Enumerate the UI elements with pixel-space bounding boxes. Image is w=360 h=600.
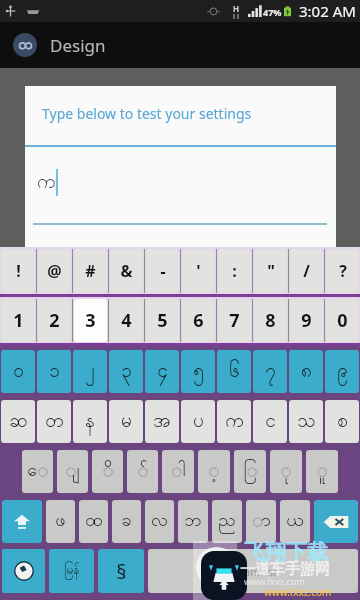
button[interactable]: ၃ (109, 350, 143, 393)
button[interactable]: # (74, 249, 107, 293)
button[interactable]: Myanmar (148, 549, 358, 593)
button[interactable]: & (110, 249, 143, 293)
staticText: က (225, 408, 244, 436)
staticText: ာ (252, 508, 271, 535)
staticText: 3 (85, 308, 96, 333)
button[interactable]: " (254, 249, 287, 293)
button[interactable]: Backspace (314, 500, 358, 543)
button[interactable]: ခ (112, 500, 141, 543)
button[interactable]: ် (127, 450, 158, 493)
button[interactable]: စ (325, 400, 359, 443)
staticText: 3:02 AM (299, 1, 356, 21)
staticText: 47% (263, 6, 282, 18)
button[interactable]: ၈ (289, 350, 323, 393)
button[interactable]: ပ (181, 400, 215, 443)
staticText: / (303, 260, 310, 282)
button[interactable]: 1 (1, 299, 35, 342)
button[interactable]: ၇ (253, 350, 287, 393)
staticText: www.fxxz.com (264, 585, 332, 599)
staticText: - (160, 260, 166, 282)
button[interactable]: App icon (13, 33, 37, 57)
button[interactable]: မြန် (49, 549, 94, 593)
button[interactable]: / (290, 249, 323, 293)
button[interactable]: အ (145, 400, 179, 443)
button[interactable]: ၀ (1, 350, 35, 393)
button[interactable]: လ (145, 500, 174, 543)
button[interactable]: - (146, 249, 179, 293)
staticText: 飞翔下载 (244, 539, 328, 565)
staticText: 2 (49, 308, 60, 333)
button[interactable]: Change keyboard (2, 549, 45, 593)
button[interactable]: ု (270, 450, 302, 493)
staticText: # (85, 260, 96, 282)
staticText: 9 (301, 308, 312, 333)
staticText: Type below to test your settings (42, 104, 252, 123)
staticText: ' (196, 260, 201, 282)
button[interactable]: ြ (234, 450, 266, 493)
staticText: ါ (171, 458, 186, 485)
button[interactable]: ထ (79, 500, 108, 543)
button[interactable]: ၂ (73, 350, 107, 393)
button[interactable]: 2 (38, 299, 71, 342)
staticText: န (85, 408, 95, 436)
button[interactable]: Shift (2, 500, 42, 543)
button[interactable]: ူ (306, 450, 338, 493)
button[interactable]: ျ (57, 450, 88, 493)
button[interactable]: ့ (198, 450, 230, 493)
button[interactable]: ည (212, 500, 242, 543)
staticText: ဖ (55, 508, 66, 535)
button[interactable]: ါ (162, 450, 194, 493)
button[interactable]: 5 (146, 299, 179, 342)
button[interactable]: ၉ (325, 350, 359, 393)
button[interactable]: 4 (110, 299, 143, 342)
staticText: တ (45, 408, 64, 436)
staticText: အ (153, 408, 171, 436)
staticText: ? (339, 260, 347, 282)
button[interactable]: မ (109, 400, 143, 443)
button[interactable]: : (218, 249, 251, 293)
button[interactable]: ၅ (181, 350, 215, 393)
button[interactable]: 3 (74, 299, 107, 342)
button[interactable]: 0 (326, 299, 359, 342)
staticText: & (120, 260, 133, 282)
button[interactable]: 9 (290, 299, 323, 342)
button[interactable]: ဖ (46, 500, 75, 543)
staticText: ူ (316, 458, 328, 485)
button[interactable]: 6 (182, 299, 215, 342)
button[interactable]: တ (37, 400, 71, 443)
button[interactable]: ိ (92, 450, 123, 493)
staticText: သ (297, 408, 316, 436)
staticText: ၁ (49, 358, 60, 386)
button[interactable]: § (98, 549, 144, 593)
button[interactable]: ယ (280, 500, 310, 543)
button[interactable]: 8 (254, 299, 287, 342)
button[interactable]: ၄ (145, 350, 179, 393)
staticText: 8 (265, 308, 276, 333)
button[interactable]: ေ (22, 450, 53, 493)
staticText: 4 (121, 308, 132, 333)
button[interactable]: က (217, 400, 251, 443)
button[interactable]: သ (289, 400, 323, 443)
staticText: H (233, 3, 240, 14)
button[interactable]: ! (1, 249, 35, 293)
staticText: ပ (193, 408, 204, 436)
button[interactable]: @ (38, 249, 71, 293)
staticText: " (267, 260, 275, 282)
button[interactable]: င (253, 400, 287, 443)
button[interactable]: ? (326, 249, 359, 293)
staticText: 0 (337, 308, 348, 333)
staticText: : (232, 260, 237, 282)
staticText: င (265, 408, 276, 436)
staticText: @ (47, 260, 62, 282)
button[interactable]: ၆ (217, 350, 251, 393)
staticText: ့ (208, 458, 220, 485)
button[interactable]: ဆ (1, 400, 35, 443)
staticText: က (37, 169, 56, 197)
button[interactable]: ာ (246, 500, 276, 543)
button[interactable]: န (73, 400, 107, 443)
button[interactable]: 7 (218, 299, 251, 342)
button[interactable]: ၁ (37, 350, 71, 393)
staticText: ခ (121, 508, 132, 535)
button[interactable]: ' (182, 249, 215, 293)
button[interactable]: ဘ (178, 500, 208, 543)
